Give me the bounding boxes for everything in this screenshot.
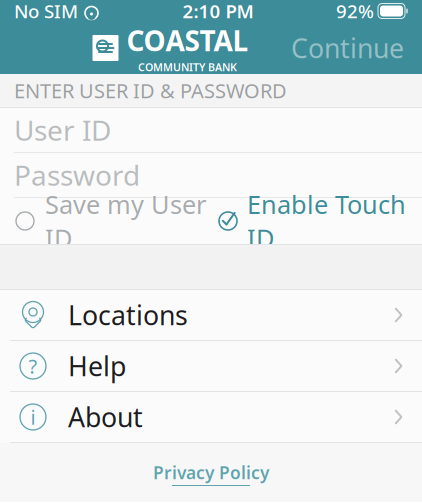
staticText: ? bbox=[28, 353, 37, 379]
button[interactable]: Save my User ID bbox=[16, 179, 206, 263]
staticText: Help bbox=[68, 348, 126, 384]
staticText: No SIM bbox=[14, 0, 78, 23]
staticText: COASTAL bbox=[126, 22, 248, 59]
staticText: Privacy Policy bbox=[153, 461, 269, 484]
staticText: ENTER USER ID & PASSWORD bbox=[14, 77, 287, 104]
staticText: About bbox=[68, 399, 143, 435]
button[interactable]: Privacy Policy bbox=[153, 453, 269, 494]
staticText: User ID bbox=[14, 111, 111, 149]
staticText: 92% bbox=[336, 0, 374, 23]
button[interactable]: ? bbox=[0, 341, 422, 392]
button[interactable]: Enable Touch ID bbox=[217, 179, 406, 263]
staticText: COMMUNITY BANK bbox=[138, 60, 237, 74]
staticText: i bbox=[30, 404, 35, 430]
staticText: Locations bbox=[68, 297, 188, 333]
staticText: Save my User ID bbox=[45, 187, 206, 255]
button[interactable]: Continue bbox=[281, 22, 414, 74]
staticText: Enable Touch ID bbox=[247, 187, 406, 255]
staticText: 2:10 PM bbox=[182, 0, 253, 23]
button[interactable]: Locations bbox=[0, 290, 422, 341]
staticText: Password bbox=[14, 156, 140, 194]
staticText: Continue bbox=[291, 30, 404, 66]
button[interactable]: i bbox=[0, 392, 422, 443]
